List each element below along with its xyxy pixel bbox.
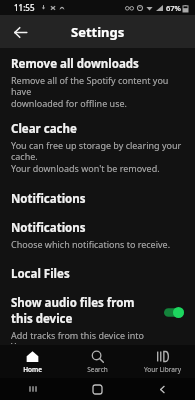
button[interactable]: Home: [65, 378, 130, 400]
staticText: You can free up storage by clearing your…: [11, 139, 184, 175]
button[interactable]: Clear cache: [0, 120, 195, 176]
staticText: Home: [23, 365, 42, 374]
button[interactable]: Recent apps: [0, 378, 65, 400]
button[interactable]: Notifications: [0, 189, 195, 209]
staticText: Local Files: [11, 266, 70, 282]
staticText: Add tracks from this device into Your Li…: [11, 329, 158, 344]
staticText: Clear cache: [11, 121, 77, 137]
button[interactable]: Search: [65, 345, 130, 378]
button[interactable]: Home: [0, 345, 65, 378]
staticText: Remove all downloads: [11, 56, 139, 72]
staticText: Your Library: [144, 365, 181, 374]
button[interactable]: Remove all downloads: [0, 55, 195, 111]
staticText: Notifications: [11, 191, 86, 207]
button[interactable]: Your Library: [130, 345, 195, 378]
button[interactable]: Back: [130, 378, 195, 400]
button[interactable]: Show audio files from this device toggle: [164, 307, 184, 318]
button[interactable]: Local Files: [0, 264, 195, 284]
staticText: Search: [87, 365, 108, 374]
staticText: Show audio files from this device: [11, 295, 158, 327]
staticText: Settings: [71, 23, 125, 41]
staticText: Notifications: [11, 220, 86, 236]
staticText: 11:55: [14, 2, 35, 13]
staticText: Choose which notifications to receive.: [11, 238, 171, 250]
button[interactable]: Show audio files from this device: [0, 294, 195, 345]
button[interactable]: Notifications: [0, 219, 195, 251]
button[interactable]: Back: [5, 17, 35, 47]
staticText: Remove all of the Spotify content you ha…: [11, 74, 184, 110]
staticText: 67%: [166, 3, 181, 13]
